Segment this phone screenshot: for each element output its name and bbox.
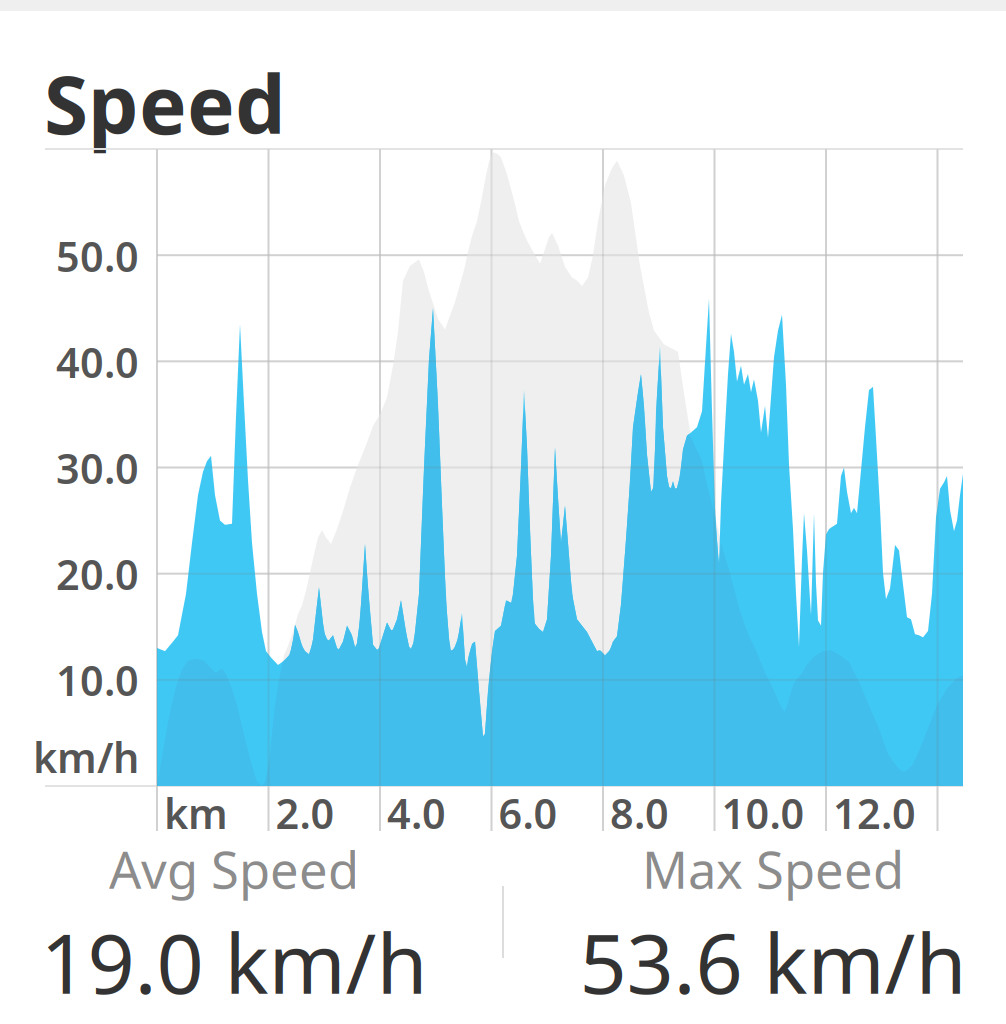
staticText: 10.0 <box>56 653 139 707</box>
staticText: 10.0 <box>721 786 804 840</box>
staticText: 53.6 km/h <box>579 907 966 1017</box>
button[interactable]: Avg Speed <box>24 866 444 986</box>
staticText: km <box>164 786 228 840</box>
staticText: 50.0 <box>56 229 139 283</box>
staticText: 4.0 <box>387 786 446 840</box>
staticText: km/h <box>33 730 139 784</box>
staticText: 6.0 <box>498 786 557 840</box>
staticText: Avg Speed <box>109 835 359 903</box>
staticText: 19.0 km/h <box>40 907 427 1017</box>
staticText: 12.0 <box>833 786 916 840</box>
staticText: 30.0 <box>56 441 139 495</box>
staticText: 2.0 <box>275 786 334 840</box>
staticText: 40.0 <box>56 335 139 389</box>
button[interactable]: Max Speed <box>563 866 983 986</box>
staticText: 8.0 <box>610 786 669 840</box>
staticText: 20.0 <box>56 547 139 601</box>
staticText: Speed <box>44 50 286 156</box>
staticText: Max Speed <box>642 835 904 903</box>
